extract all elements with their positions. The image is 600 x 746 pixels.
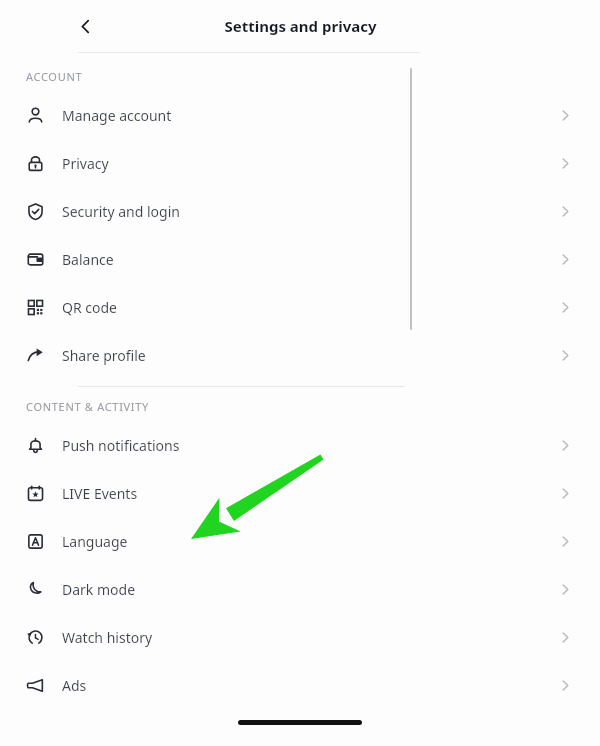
button[interactable]: Privacy [0,139,600,187]
staticText: Watch history [62,628,153,647]
button[interactable]: LIVE Events [0,469,600,517]
button[interactable]: QR code [0,283,600,331]
staticText: Settings and privacy [224,16,377,36]
button[interactable]: Language [0,517,600,565]
staticText: ACCOUNT [26,69,83,84]
staticText: Security and login [62,202,180,221]
staticText: Balance [62,250,114,269]
button[interactable]: Push notifications [0,421,600,469]
button[interactable]: Manage account [0,91,600,139]
staticText: Privacy [62,154,109,173]
staticText: LIVE Events [62,484,138,503]
button[interactable]: Balance [0,235,600,283]
staticText: Share profile [62,346,146,365]
button[interactable]: Security and login [0,187,600,235]
button[interactable]: Share profile [0,331,600,379]
button[interactable]: Watch history [0,613,600,661]
button[interactable]: Dark mode [0,565,600,613]
button[interactable]: Ads [0,661,600,709]
staticText: QR code [62,298,117,317]
staticText: Ads [62,676,87,695]
staticText: Push notifications [62,436,180,455]
staticText: Dark mode [62,580,136,599]
staticText: CONTENT & ACTIVITY [26,399,150,414]
staticText: Manage account [62,106,172,125]
button[interactable]: Back [70,11,100,41]
staticText: Language [62,532,128,551]
